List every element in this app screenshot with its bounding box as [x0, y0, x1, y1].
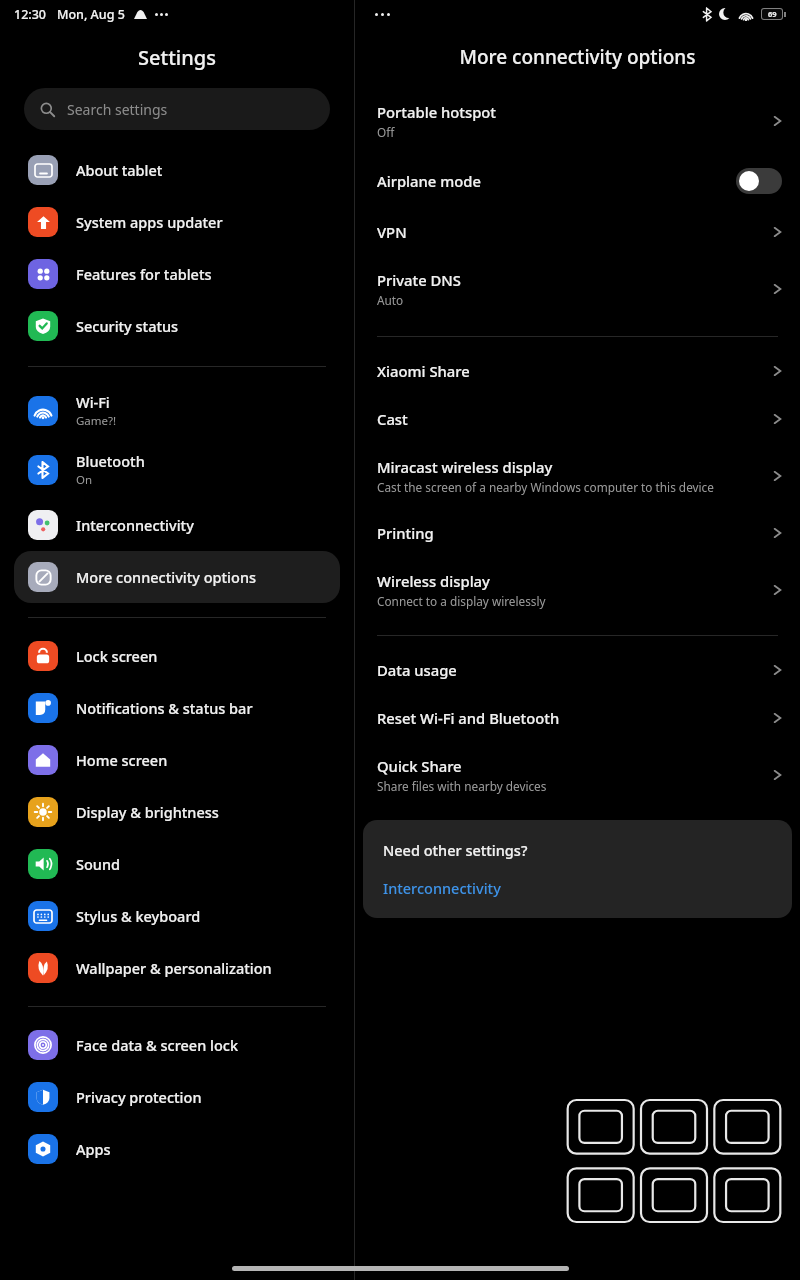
button[interactable]: Reset Wi-Fi and Bluetooth — [355, 694, 800, 742]
staticText: Notifications & status bar — [76, 698, 253, 718]
button[interactable]: Airplane mode — [355, 154, 800, 208]
button[interactable]: Wireless display — [355, 557, 800, 623]
staticText: More connectivity options — [76, 567, 257, 587]
staticText: Game?! — [76, 413, 117, 429]
staticText: Printing — [377, 523, 434, 543]
button[interactable]: Portable hotspot — [355, 88, 800, 154]
staticText: Xiaomi Share — [377, 361, 470, 381]
staticText: Search settings — [67, 100, 168, 119]
staticText: Wallpaper & personalization — [76, 958, 272, 978]
staticText: Mon, Aug 5 — [57, 6, 125, 23]
staticText: Quick Share — [377, 756, 462, 776]
button[interactable]: Notifications & status bar — [14, 682, 340, 734]
button[interactable]: Privacy protection — [14, 1071, 340, 1123]
staticText: Data usage — [377, 660, 457, 680]
staticText: VPN — [377, 222, 407, 242]
button[interactable]: Xiaomi Share — [355, 347, 800, 395]
button[interactable]: Bluetooth — [14, 440, 340, 499]
staticText: Connect to a display wirelessly — [377, 593, 546, 609]
staticText: Stylus & keyboard — [76, 906, 201, 926]
staticText: Settings — [0, 44, 354, 71]
staticText: Display & brightness — [76, 802, 219, 822]
staticText: Bluetooth — [76, 451, 145, 471]
button[interactable]: Sound — [14, 838, 340, 890]
staticText: Off — [377, 124, 395, 140]
button[interactable]: Miracast wireless display — [355, 443, 800, 509]
staticText: Share files with nearby devices — [377, 778, 547, 794]
staticText: Cast — [377, 409, 408, 429]
button[interactable]: More connectivity options — [14, 551, 340, 603]
staticText: Lock screen — [76, 646, 158, 666]
staticText: About tablet — [76, 160, 163, 180]
staticText: On — [76, 472, 93, 488]
staticText: Features for tablets — [76, 264, 212, 284]
button[interactable]: Interconnectivity — [383, 878, 501, 898]
staticText: Interconnectivity — [76, 515, 194, 535]
staticText: Portable hotspot — [377, 102, 497, 122]
staticText: Home screen — [76, 750, 168, 770]
button[interactable]: Quick Share — [355, 742, 800, 808]
button[interactable]: Cast — [355, 395, 800, 443]
staticText: Sound — [76, 854, 121, 874]
button[interactable]: Stylus & keyboard — [14, 890, 340, 942]
button[interactable]: Lock screen — [14, 630, 340, 682]
button[interactable]: Data usage — [355, 646, 800, 694]
staticText: Face data & screen lock — [76, 1035, 239, 1055]
button[interactable]: Home screen — [14, 734, 340, 786]
button[interactable]: Interconnectivity — [14, 499, 340, 551]
button[interactable]: Wi-Fi — [14, 381, 340, 440]
staticText: Apps — [76, 1139, 111, 1159]
button[interactable]: VPN — [355, 208, 800, 256]
button[interactable]: Security status — [14, 300, 340, 352]
staticText: Miracast wireless display — [377, 457, 553, 477]
button[interactable]: About tablet — [14, 144, 340, 196]
staticText: System apps updater — [76, 212, 223, 232]
staticText: Auto — [377, 292, 404, 308]
staticText: Cast the screen of a nearby Windows comp… — [377, 479, 714, 495]
staticText: Reset Wi-Fi and Bluetooth — [377, 708, 560, 728]
staticText: Need other settings? — [383, 840, 528, 860]
button[interactable]: Private DNS — [355, 256, 800, 322]
staticText: Private DNS — [377, 270, 461, 290]
button[interactable]: Apps — [14, 1123, 340, 1175]
button[interactable]: Features for tablets — [14, 248, 340, 300]
staticText: Airplane mode — [377, 171, 481, 191]
button[interactable]: Airplane mode — [736, 168, 782, 194]
button[interactable]: Search settings — [24, 88, 330, 130]
button[interactable]: Face data & screen lock — [14, 1019, 340, 1071]
staticText: Wireless display — [377, 571, 490, 591]
button[interactable]: Wallpaper & personalization — [14, 942, 340, 994]
staticText: More connectivity options — [355, 44, 800, 70]
staticText: Security status — [76, 316, 179, 336]
staticText: Wi-Fi — [76, 392, 110, 412]
staticText: 69 — [768, 9, 777, 19]
staticText: Interconnectivity — [383, 878, 501, 898]
staticText: 12:30 — [14, 6, 47, 23]
button[interactable]: System apps updater — [14, 196, 340, 248]
button[interactable]: Printing — [355, 509, 800, 557]
staticText: Privacy protection — [76, 1087, 202, 1107]
button[interactable]: Display & brightness — [14, 786, 340, 838]
